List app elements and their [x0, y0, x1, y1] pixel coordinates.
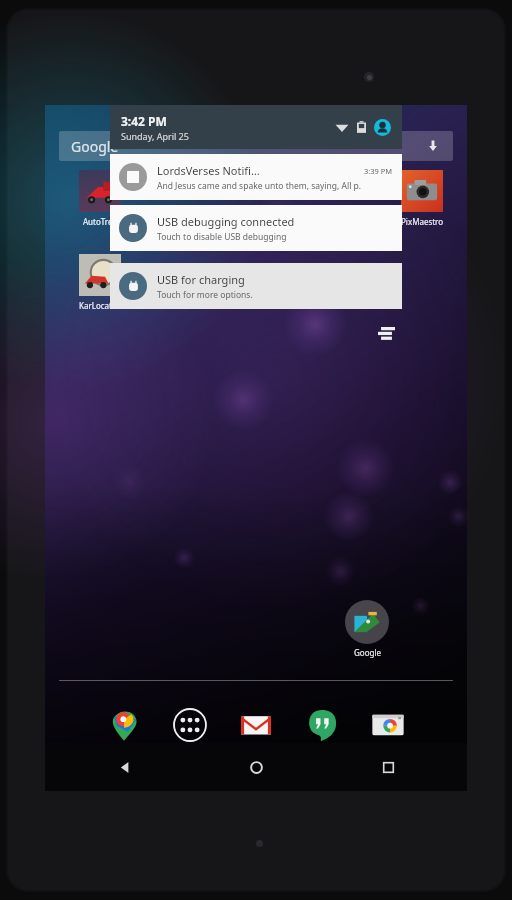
button[interactable]: USB debugging connected [110, 205, 402, 251]
button[interactable]: KarLocator [69, 253, 131, 311]
staticText: LordsVerses Notification [157, 163, 260, 178]
button[interactable]: LordsVerses Notification [110, 154, 402, 200]
staticText: And Jesus came and spake unto them, sayi… [157, 180, 362, 192]
button[interactable]: AutoTrek [69, 169, 131, 227]
button[interactable]: PixMaestro [391, 169, 453, 227]
staticText: PixMaestro [401, 216, 444, 227]
staticText: Google [71, 137, 119, 156]
button[interactable]: User profile [374, 119, 391, 136]
button[interactable]: Hangouts [300, 703, 344, 747]
button[interactable]: Home [233, 744, 279, 790]
button[interactable]: Google [335, 600, 399, 658]
button[interactable]: Back [101, 744, 147, 790]
button[interactable]: Camera [366, 703, 410, 747]
button[interactable]: All apps [168, 703, 212, 747]
staticText: AutoTrek [83, 216, 117, 227]
button[interactable]: Maps [102, 703, 146, 747]
button[interactable]: Recent apps [365, 744, 411, 790]
staticText: Google [354, 647, 381, 658]
button[interactable]: Clear all notifications [374, 321, 398, 345]
staticText: 3:42 PM [121, 113, 167, 129]
button[interactable]: Gmail [234, 703, 278, 747]
staticText: Touch for more options. [157, 289, 253, 301]
button[interactable]: 3:42 PM [110, 105, 402, 149]
staticText: USB debugging connected [157, 214, 295, 229]
staticText: Sunday, April 25 [121, 130, 189, 142]
staticText: 3:39 PM [364, 166, 393, 176]
staticText: KarLocator [79, 300, 121, 311]
staticText: Touch to disable USB debugging [157, 231, 287, 243]
staticText: USB for charging [157, 272, 245, 287]
button[interactable]: Google [59, 131, 453, 161]
button[interactable]: USB for charging [110, 263, 402, 309]
